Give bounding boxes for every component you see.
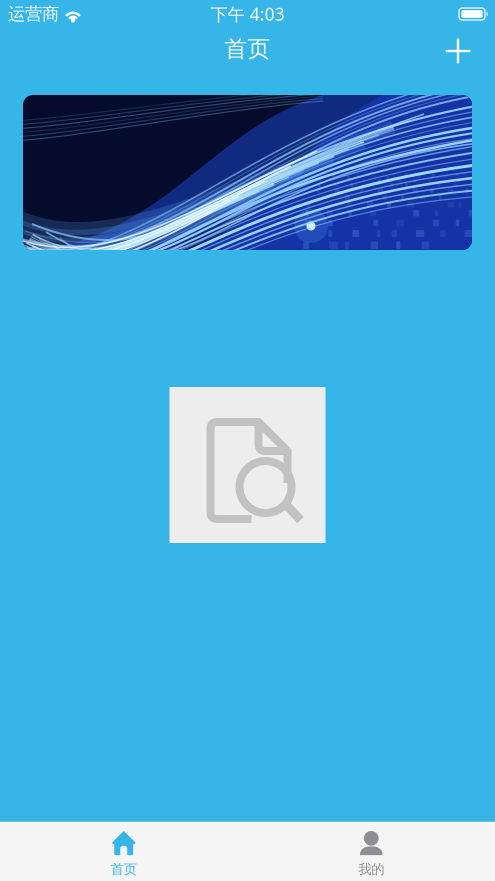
staticText: 下午 4:03 (210, 2, 284, 25)
button[interactable]: Add (437, 27, 481, 71)
staticText: 首页 (111, 861, 137, 878)
button[interactable]: 我的 (247, 821, 495, 881)
staticText: 首页 (224, 35, 270, 63)
staticText: 运营商 (8, 3, 59, 25)
button[interactable]: 首页 (0, 821, 247, 881)
staticText: 我的 (358, 861, 384, 878)
